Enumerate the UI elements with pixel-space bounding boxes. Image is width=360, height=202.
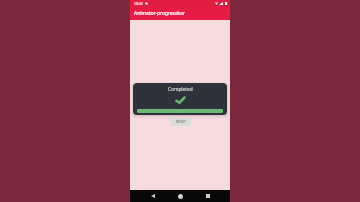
staticText: Completed	[168, 86, 193, 93]
staticText: RESET	[176, 119, 186, 124]
button[interactable]: Back	[147, 190, 158, 202]
button[interactable]: RESET	[170, 118, 191, 126]
staticText: 18:32	[134, 1, 143, 6]
staticText: Animator-progressbar	[134, 10, 185, 17]
button[interactable]: Recents	[202, 190, 213, 202]
button[interactable]: Home	[175, 190, 186, 202]
